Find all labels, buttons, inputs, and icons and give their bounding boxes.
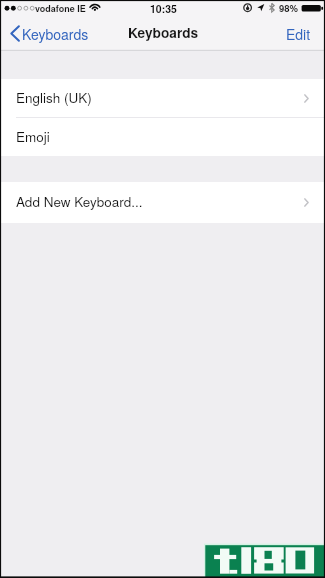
staticText: vodafone IE — [35, 2, 86, 15]
staticText: 98% — [279, 1, 299, 15]
button[interactable]: Edit — [274, 18, 325, 49]
button[interactable]: English (UK) — [0, 79, 325, 118]
staticText: Edit — [286, 24, 311, 41]
button[interactable]: Back — [0, 18, 325, 49]
staticText: Add New Keyboard... — [16, 192, 143, 211]
button[interactable]: Add New Keyboard... — [0, 182, 325, 223]
staticText: English (UK) — [16, 88, 92, 107]
button[interactable]: Emoji — [0, 118, 325, 157]
staticText: Emoji — [16, 127, 50, 146]
staticText: Keyboards — [22, 24, 89, 44]
staticText: 10:35 — [150, 1, 177, 16]
other: Back — [10, 25, 20, 42]
staticText: Keyboards — [128, 23, 199, 43]
